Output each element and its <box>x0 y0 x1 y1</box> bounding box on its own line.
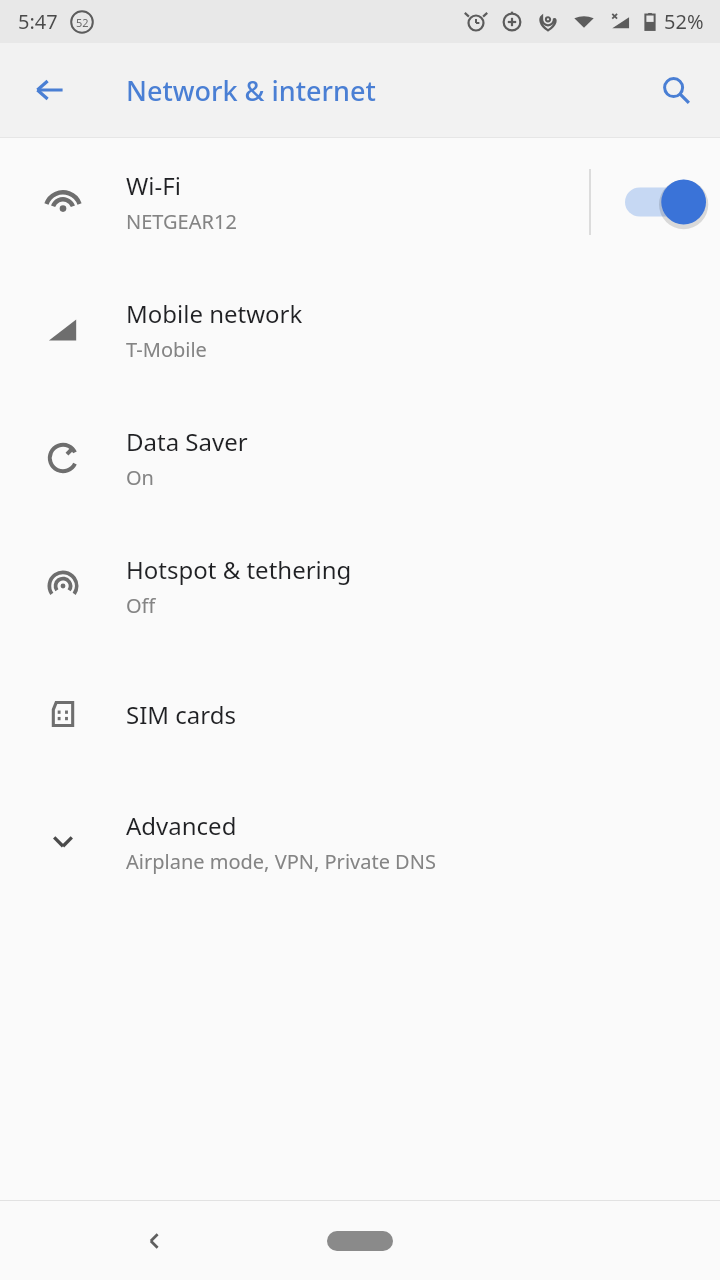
staticText: On <box>126 464 154 491</box>
button[interactable]: Home <box>310 1219 410 1263</box>
button[interactable]: Advanced <box>0 778 720 906</box>
button[interactable]: Search <box>648 62 704 118</box>
staticText: Wi-Fi <box>126 169 181 202</box>
staticText: T-Mobile <box>126 336 207 363</box>
button[interactable]: Back <box>125 1211 185 1271</box>
button[interactable]: Hotspot & tethering <box>0 522 720 650</box>
staticText: NETGEAR12 <box>126 208 237 235</box>
staticText: 52% <box>664 8 704 35</box>
button[interactable]: Wi-Fi <box>0 138 720 266</box>
staticText: Mobile network <box>126 297 303 330</box>
staticText: Advanced <box>126 809 237 842</box>
staticText: Network & internet <box>126 72 376 109</box>
staticText: Data Saver <box>126 425 248 458</box>
staticText: Off <box>126 592 156 619</box>
button[interactable]: Mobile network <box>0 266 720 394</box>
button[interactable]: Data Saver <box>0 394 720 522</box>
staticText: Airplane mode, VPN, Private DNS <box>126 848 436 875</box>
button[interactable]: SIM cards <box>0 650 720 778</box>
staticText: SIM cards <box>126 698 236 731</box>
staticText: 52 <box>76 15 89 30</box>
staticText: 5:47 <box>18 8 58 35</box>
button[interactable]: Wi-Fi toggle <box>625 174 711 230</box>
button[interactable]: Back <box>22 62 78 118</box>
staticText: Hotspot & tethering <box>126 553 352 586</box>
